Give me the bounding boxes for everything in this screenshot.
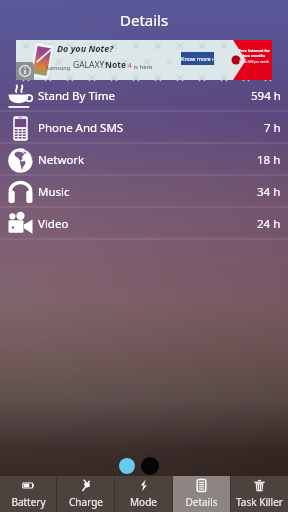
staticText: Task Killer — [236, 495, 283, 509]
button[interactable]: Charge — [57, 476, 114, 512]
staticText: 4 — [126, 61, 132, 71]
staticText: Network — [38, 152, 85, 168]
staticText: Phone And SMS — [38, 120, 124, 136]
button[interactable]: Page 2 — [141, 457, 159, 475]
button[interactable]: Music — [0, 176, 288, 208]
staticText: Charge — [69, 495, 103, 509]
staticText: Stand By Time — [38, 88, 116, 104]
staticText: GALAXY — [73, 59, 105, 71]
staticText: Free Internet for — [239, 48, 270, 53]
button[interactable]: Stand By Time — [0, 80, 288, 112]
staticText: Do you Note? — [57, 42, 114, 54]
button[interactable]: Video — [0, 208, 288, 240]
staticText: Details — [120, 10, 169, 30]
staticText: 18 h — [257, 152, 281, 168]
staticText: 24 h — [257, 216, 281, 232]
button[interactable]: Advertisement — [16, 40, 272, 80]
button[interactable]: Details — [173, 476, 230, 512]
button[interactable]: Mode — [115, 476, 172, 512]
staticText: two months — [243, 53, 266, 58]
staticText: Up to 3GB per month — [239, 60, 270, 64]
staticText: Mode — [130, 495, 157, 509]
button[interactable]: Phone And SMS — [0, 112, 288, 144]
staticText: 34 h — [257, 184, 281, 200]
staticText: 594 h — [251, 88, 281, 104]
button[interactable]: Battery — [0, 476, 56, 512]
button[interactable]: Page 1 — [119, 458, 135, 474]
button[interactable]: Network — [0, 144, 288, 176]
staticText: Video — [38, 216, 69, 232]
staticText: is here — [132, 63, 153, 71]
staticText: Know more › — [181, 55, 214, 62]
staticText: Samsung — [46, 64, 71, 71]
staticText: Battery — [11, 495, 46, 509]
staticText: 7 h — [264, 120, 281, 136]
staticText: Music — [38, 184, 70, 200]
staticText: Note — [105, 59, 126, 71]
button[interactable]: Task Killer — [231, 476, 288, 512]
staticText: Details — [185, 495, 218, 509]
